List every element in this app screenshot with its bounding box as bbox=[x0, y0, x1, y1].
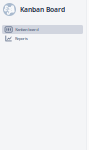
staticText: Kanban board bbox=[15, 27, 38, 32]
button[interactable]: Kanban board bbox=[2, 25, 83, 34]
staticText: Kanban Board bbox=[20, 5, 65, 14]
button[interactable]: Reports bbox=[2, 34, 83, 43]
staticText: Reports bbox=[15, 36, 28, 41]
